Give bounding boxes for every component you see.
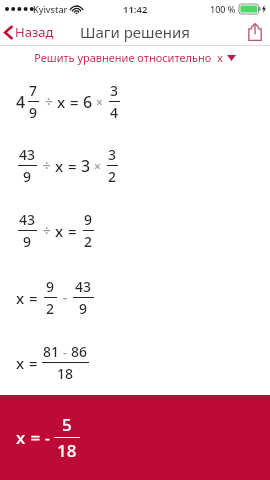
staticText: 9 xyxy=(23,167,32,186)
staticText: 4 xyxy=(110,103,119,122)
staticText: 100 % xyxy=(210,3,236,15)
staticText: 9 xyxy=(29,103,38,122)
staticText: 43 xyxy=(19,145,36,164)
button[interactable]: 43 xyxy=(0,135,270,195)
staticText: 3 xyxy=(81,155,91,177)
staticText: 9 xyxy=(46,277,55,296)
button[interactable]: Назад xyxy=(0,20,62,44)
button[interactable]: Share xyxy=(240,20,270,44)
staticText: 43 xyxy=(75,277,92,296)
staticText: = xyxy=(25,288,42,308)
staticText: 9 xyxy=(79,299,88,318)
button[interactable]: x xyxy=(0,395,270,480)
staticText: × xyxy=(91,158,105,174)
button[interactable]: x xyxy=(0,330,270,395)
staticText: 5 xyxy=(62,413,72,436)
staticText: 18 xyxy=(57,439,77,462)
staticText: ÷ xyxy=(41,92,57,111)
staticText: - xyxy=(59,288,71,307)
staticText: 7 xyxy=(29,81,38,100)
staticText: ÷ xyxy=(39,156,55,175)
staticText: 43 xyxy=(19,210,36,229)
staticText: = xyxy=(64,221,81,241)
staticText: Шаги решения xyxy=(80,22,190,42)
staticText: Решить уравнение относительно x xyxy=(34,50,223,65)
staticText: Назад xyxy=(15,23,54,41)
staticText: 4 xyxy=(16,91,26,113)
staticText: 86 xyxy=(71,342,88,361)
staticText: 2 xyxy=(46,299,55,318)
staticText: - xyxy=(60,344,71,360)
staticText: 2 xyxy=(108,167,117,186)
staticText: x xyxy=(55,221,64,241)
button[interactable]: 4 xyxy=(0,68,270,135)
staticText: x xyxy=(16,288,25,308)
staticText: x xyxy=(16,426,26,449)
staticText: x xyxy=(57,92,66,112)
staticText: Kyivstar xyxy=(33,3,68,15)
staticText: 11:42 xyxy=(123,3,148,16)
staticText: = xyxy=(26,426,45,449)
button[interactable]: x xyxy=(0,265,270,330)
button[interactable]: Решить уравнение относительно x xyxy=(0,46,270,68)
staticText: 3 xyxy=(108,145,117,164)
staticText: 18 xyxy=(57,364,74,383)
staticText: x xyxy=(16,353,25,373)
staticText: = xyxy=(64,156,81,176)
staticText: = xyxy=(25,353,42,373)
staticText: 3 xyxy=(110,81,119,100)
staticText: 9 xyxy=(23,232,32,251)
staticText: = xyxy=(66,92,83,112)
staticText: x xyxy=(55,156,64,176)
staticText: 2 xyxy=(84,232,93,251)
staticText: × xyxy=(93,94,107,110)
staticText: 81 xyxy=(43,342,60,361)
staticText: ÷ xyxy=(39,221,55,240)
staticText: - xyxy=(45,428,50,448)
button[interactable]: 43 xyxy=(0,195,270,265)
staticText: 9 xyxy=(84,210,93,229)
staticText: 6 xyxy=(83,91,93,113)
